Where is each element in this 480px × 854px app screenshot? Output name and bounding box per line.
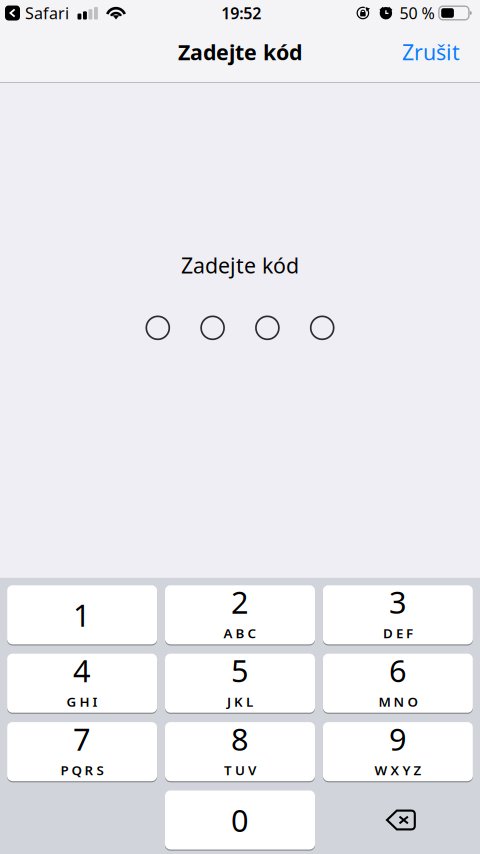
staticText: D E F [383,624,413,642]
staticText: 1 [73,594,91,635]
button[interactable]: Zrušit [392,30,470,74]
button[interactable]: 0 [165,790,315,849]
staticText: M N O [378,693,417,710]
button[interactable]: Back to Safari [5,2,69,24]
staticText: 7 [73,718,91,759]
button[interactable]: 8 [165,722,315,781]
staticText: 9 [389,718,407,759]
staticText: 0 [231,800,249,840]
staticText: P Q R S [61,761,104,779]
button[interactable]: 2 [165,585,315,644]
button[interactable]: 6 [323,654,473,713]
button[interactable]: 7 [7,722,157,781]
staticText: W X Y Z [374,761,421,779]
staticText: Zadejte kód [181,251,299,279]
staticText: Zadejte kód [178,38,302,66]
staticText: 4 [73,650,91,691]
staticText: 5 [231,650,249,691]
staticText: Safari [25,2,69,24]
button[interactable]: 4 [7,654,157,713]
button[interactable]: 9 [323,722,473,781]
staticText: 8 [231,718,249,759]
staticText: G H I [67,693,98,710]
staticText: Zrušit [402,38,460,66]
staticText: T U V [224,761,256,779]
staticText: 19:52 [221,2,261,24]
button[interactable]: Delete [323,790,473,849]
button[interactable]: 5 [165,654,315,713]
staticText: 3 [389,582,407,622]
staticText: 2 [231,582,249,622]
button[interactable]: 1 [7,585,157,644]
staticText: 6 [389,650,407,691]
staticText: A B C [223,624,256,642]
button[interactable]: 3 [323,585,473,644]
staticText: J K L [227,693,253,710]
staticText: 50 % [399,2,434,24]
